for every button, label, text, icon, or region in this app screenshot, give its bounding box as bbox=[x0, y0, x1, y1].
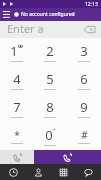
staticText: 9 bbox=[80, 98, 88, 116]
staticText: 2 bbox=[46, 42, 54, 60]
staticText: 7 bbox=[13, 98, 21, 116]
staticText: + bbox=[53, 127, 56, 134]
button[interactable]: 3 bbox=[67, 38, 101, 66]
button[interactable]: 2 bbox=[33, 38, 67, 66]
staticText: 1 bbox=[10, 42, 18, 60]
button[interactable]: Messages bbox=[76, 164, 101, 180]
staticText: # bbox=[81, 128, 88, 142]
button[interactable]: Backspace bbox=[82, 22, 97, 37]
button[interactable]: Contacts bbox=[26, 164, 51, 180]
staticText: 0 bbox=[45, 126, 53, 144]
staticText: 8 bbox=[46, 98, 54, 116]
button[interactable]: * bbox=[0, 122, 33, 150]
button[interactable]: 9 bbox=[67, 94, 101, 122]
staticText: 12:13 bbox=[85, 1, 98, 8]
button[interactable]: # bbox=[67, 122, 101, 150]
button[interactable]: Internet call bbox=[0, 150, 34, 164]
staticText: 5 bbox=[46, 70, 54, 88]
button[interactable]: 5 bbox=[33, 66, 67, 94]
button[interactable]: Call bbox=[34, 150, 101, 164]
button[interactable]: 4 bbox=[0, 66, 33, 94]
staticText: * bbox=[14, 128, 20, 142]
button[interactable]: Open navigation menu bbox=[0, 8, 13, 21]
button[interactable]: 0 bbox=[33, 122, 67, 150]
staticText: 4 bbox=[13, 70, 21, 88]
button[interactable]: 6 bbox=[67, 66, 101, 94]
staticText: 3 bbox=[80, 42, 88, 60]
staticText: Enter a number bbox=[7, 21, 82, 38]
button[interactable]: Keypad bbox=[51, 164, 76, 180]
staticText: 6 bbox=[80, 70, 88, 88]
button[interactable]: Recent calls bbox=[0, 164, 26, 180]
button[interactable]: 1 bbox=[0, 38, 33, 66]
staticText: No account configured bbox=[21, 11, 75, 18]
button[interactable]: 7 bbox=[0, 94, 33, 122]
button[interactable]: 8 bbox=[33, 94, 67, 122]
